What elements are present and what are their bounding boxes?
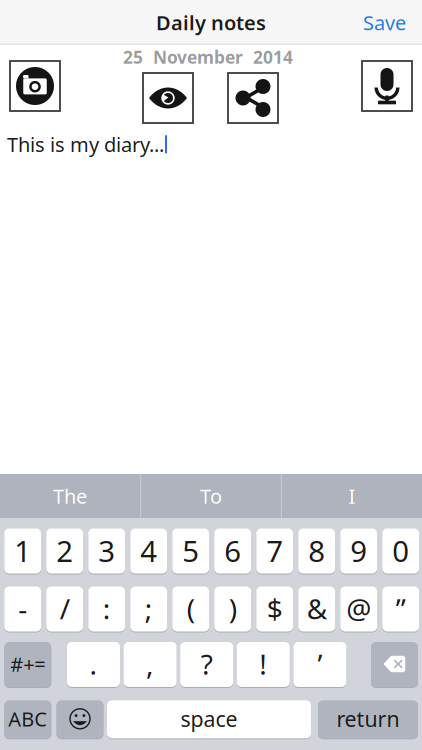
staticText: ; [145,590,153,627]
staticText: , [146,645,154,683]
staticText: 3 [98,531,115,570]
button[interactable]: ’ [293,641,346,687]
button[interactable]: Emoji [56,700,103,739]
staticText: 0 [392,531,409,570]
staticText: ABC [8,705,47,732]
button[interactable]: ABC [4,700,51,739]
button[interactable]: 4 [130,528,167,574]
button[interactable]: Preview [143,73,193,123]
staticText: 5 [182,531,199,570]
button[interactable]: & [298,586,335,632]
staticText: This is my diary... [7,131,164,158]
button[interactable]: 2 [46,528,83,574]
button[interactable]: ” [382,586,419,632]
button[interactable]: Save [363,9,422,36]
staticText: $ [267,590,283,627]
staticText: ! [259,645,267,683]
button[interactable]: $ [256,586,293,632]
staticText: Save [363,9,406,36]
button[interactable]: ; [130,586,167,632]
button[interactable]: ) [214,586,251,632]
button[interactable]: I [282,474,422,518]
staticText: ( [187,590,195,627]
staticText: The [53,483,87,509]
staticText: & [307,590,327,627]
staticText: 4 [140,531,157,570]
staticText: : [103,590,111,627]
button[interactable]: ( [172,586,209,632]
staticText: To [200,483,222,509]
button[interactable]: return [318,700,418,739]
button[interactable]: 3 [88,528,125,574]
button[interactable]: 6 [214,528,251,574]
button[interactable]: , [124,641,177,687]
button[interactable]: Camera [10,61,60,111]
staticText: 8 [308,531,325,570]
staticText: 1 [14,531,31,570]
button[interactable]: Delete [371,641,418,687]
button[interactable]: #+= [4,641,51,687]
staticText: space [180,705,237,733]
button[interactable]: @ [340,586,377,632]
button[interactable]: The [0,474,140,518]
button[interactable]: Share [228,73,278,123]
staticText: @ [346,590,371,627]
button[interactable]: 1 [4,528,41,574]
staticText: I [348,483,355,509]
staticText: #+= [10,651,45,677]
button[interactable]: 5 [172,528,209,574]
button[interactable]: . [67,641,120,687]
button[interactable]: ? [180,641,233,687]
button[interactable]: ! [237,641,290,687]
button[interactable]: : [88,586,125,632]
staticText: Daily notes [156,9,266,36]
button[interactable]: 0 [382,528,419,574]
staticText: 25 November 2014 [123,45,293,68]
button[interactable]: 7 [256,528,293,574]
staticText: 6 [224,531,241,570]
staticText: / [60,590,70,627]
staticText: 7 [266,531,283,570]
staticText: 2 [56,531,73,570]
staticText: 9 [350,531,367,570]
button[interactable]: - [4,586,41,632]
staticText: ) [229,590,237,627]
staticText: - [18,590,27,627]
staticText: ? [201,645,213,683]
button[interactable]: 8 [298,528,335,574]
staticText: ” [396,590,406,627]
button[interactable]: To [141,474,281,518]
button[interactable]: 9 [340,528,377,574]
staticText: . [89,645,97,683]
staticText: ’ [317,645,322,683]
staticText: return [336,705,399,733]
button[interactable]: space [107,700,311,739]
button[interactable]: Record audio [362,61,412,111]
button[interactable]: / [46,586,83,632]
